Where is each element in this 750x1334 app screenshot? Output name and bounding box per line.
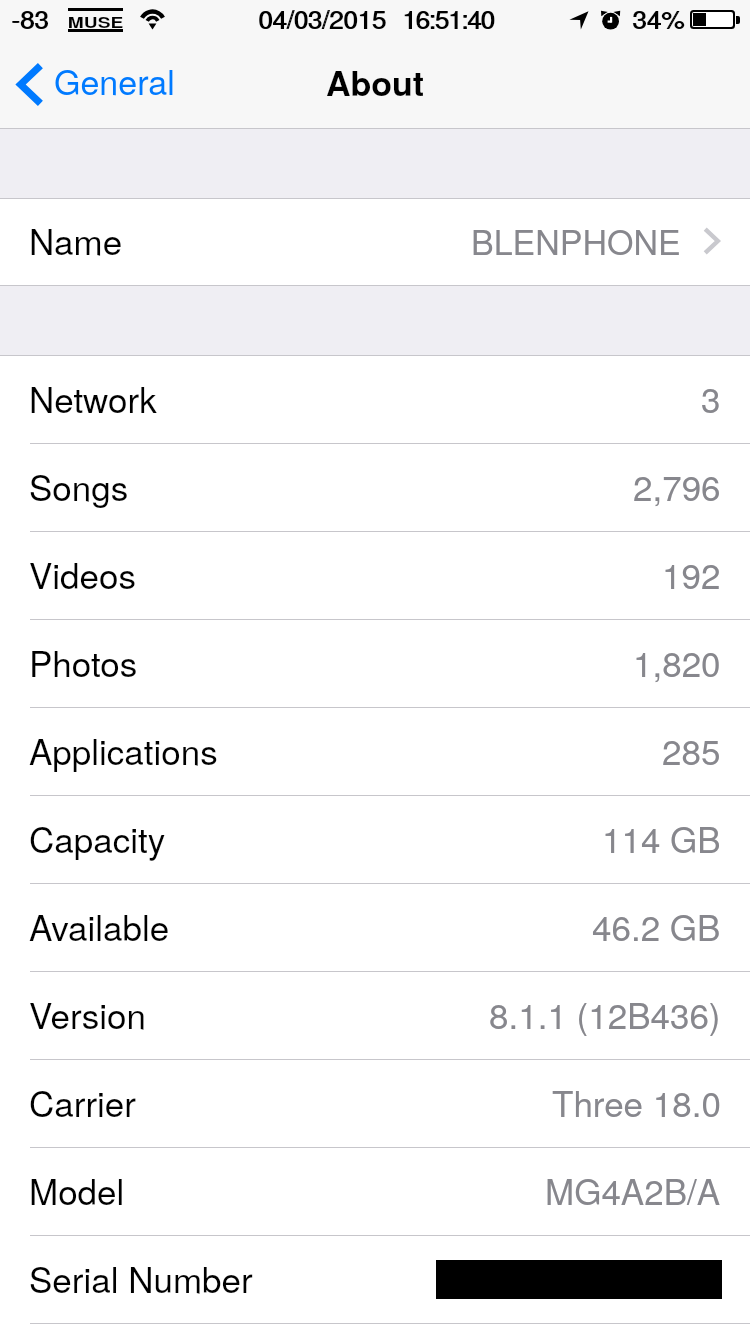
button[interactable]: Capacity [0,796,750,883]
staticText: -83 [11,0,49,36]
staticText: 3 [701,373,721,423]
button[interactable]: Carrier [0,1060,750,1147]
staticText: 8.1.1 (12B436) [489,989,721,1039]
staticText: Network [29,373,157,423]
staticText: 285 [662,725,721,775]
button[interactable]: Model [0,1148,750,1235]
staticText: Videos [29,549,136,599]
staticText: Photos [29,637,138,687]
staticText: About [326,58,425,107]
button[interactable]: Version [0,972,750,1059]
staticText: Version [29,989,146,1039]
staticText: 34% [633,0,686,36]
staticText: Model [29,1165,125,1215]
staticText: 04/03/2015 [258,0,386,36]
staticText: Applications [29,725,218,775]
button[interactable]: Photos [0,620,750,707]
staticText: Name [29,215,123,265]
staticText: BLENPHONE [471,216,681,265]
staticText: MG4A2B/A [545,1165,721,1215]
staticText: 16:51:40 [402,0,494,36]
staticText: General [54,56,175,105]
staticText: Serial Number [29,1253,253,1303]
staticText: 16:51:40 [403,0,495,36]
staticText: 1,820 [633,637,721,687]
staticText: 2,796 [633,461,721,511]
staticText: Three 18.0 [552,1077,721,1127]
button[interactable]: General [0,50,187,119]
staticText: Available [29,901,170,951]
button[interactable]: Songs [0,444,750,531]
staticText: 04/03/2015 [259,0,387,36]
staticText: MUSE [68,11,124,29]
button[interactable]: Network [0,356,750,443]
button[interactable]: Name [0,199,750,285]
staticText: Carrier [29,1077,136,1127]
staticText: 114 GB [602,813,721,863]
staticText: Songs [29,461,129,511]
staticText: 34% [632,0,685,36]
staticText: Capacity [29,813,166,863]
button[interactable]: Available [0,884,750,971]
staticText: 46.2 GB [592,901,721,951]
staticText: -83 [12,0,50,36]
staticText: 192 [662,549,721,599]
button[interactable]: Serial Number [0,1236,750,1323]
button[interactable]: Videos [0,532,750,619]
button[interactable]: Applications [0,708,750,795]
